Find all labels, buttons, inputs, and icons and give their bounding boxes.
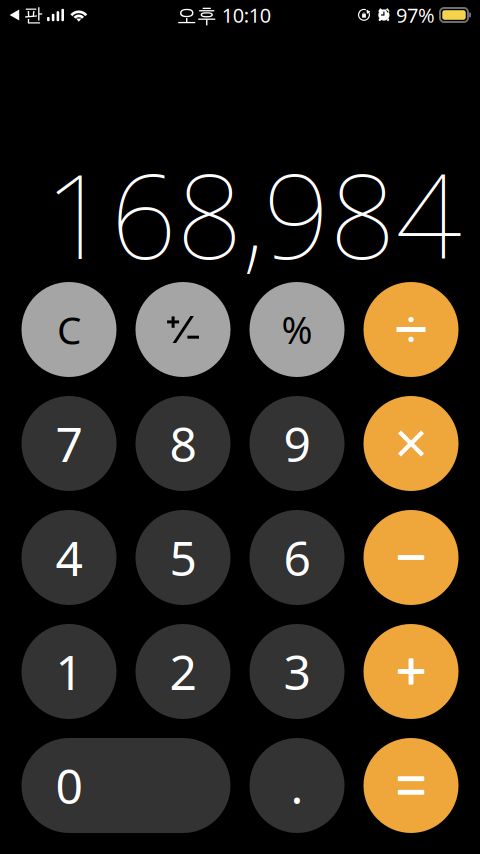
staticText: 1 xyxy=(55,639,82,704)
button[interactable]: 6 xyxy=(249,510,344,605)
button[interactable]: Plus minus xyxy=(135,282,230,377)
button[interactable]: . xyxy=(249,738,344,833)
staticText: 8 xyxy=(169,411,196,476)
button[interactable]: 3 xyxy=(249,624,344,719)
button[interactable]: C xyxy=(21,282,116,377)
staticText: 6 xyxy=(283,525,310,590)
button[interactable]: Equals xyxy=(363,738,458,833)
button[interactable]: 1 xyxy=(21,624,116,719)
staticText: % xyxy=(281,304,312,355)
button[interactable]: 9 xyxy=(249,396,344,491)
staticText: 5 xyxy=(169,525,196,590)
button[interactable]: 5 xyxy=(135,510,230,605)
button[interactable]: Subtract xyxy=(363,510,458,605)
button[interactable]: 7 xyxy=(21,396,116,491)
staticText: 판 xyxy=(24,3,43,26)
staticText: 3 xyxy=(283,639,310,704)
staticText: 97% xyxy=(396,2,435,28)
button[interactable]: 0 xyxy=(21,738,230,833)
staticText: C xyxy=(57,303,81,356)
staticText: 7 xyxy=(55,411,82,476)
button[interactable]: % xyxy=(249,282,344,377)
staticText: 9 xyxy=(283,411,310,476)
staticText: 오후 10:10 xyxy=(177,2,271,28)
button[interactable]: 2 xyxy=(135,624,230,719)
staticText: 0 xyxy=(55,753,82,818)
staticText: 4 xyxy=(55,525,82,590)
button[interactable]: Add xyxy=(363,624,458,719)
button[interactable]: 4 xyxy=(21,510,116,605)
button[interactable]: 8 xyxy=(135,396,230,491)
button[interactable]: Divide xyxy=(363,282,458,377)
staticText: 2 xyxy=(169,639,196,704)
staticText: 168,984 xyxy=(44,135,461,293)
button[interactable]: Multiply xyxy=(363,396,458,491)
staticText: . xyxy=(290,753,303,818)
